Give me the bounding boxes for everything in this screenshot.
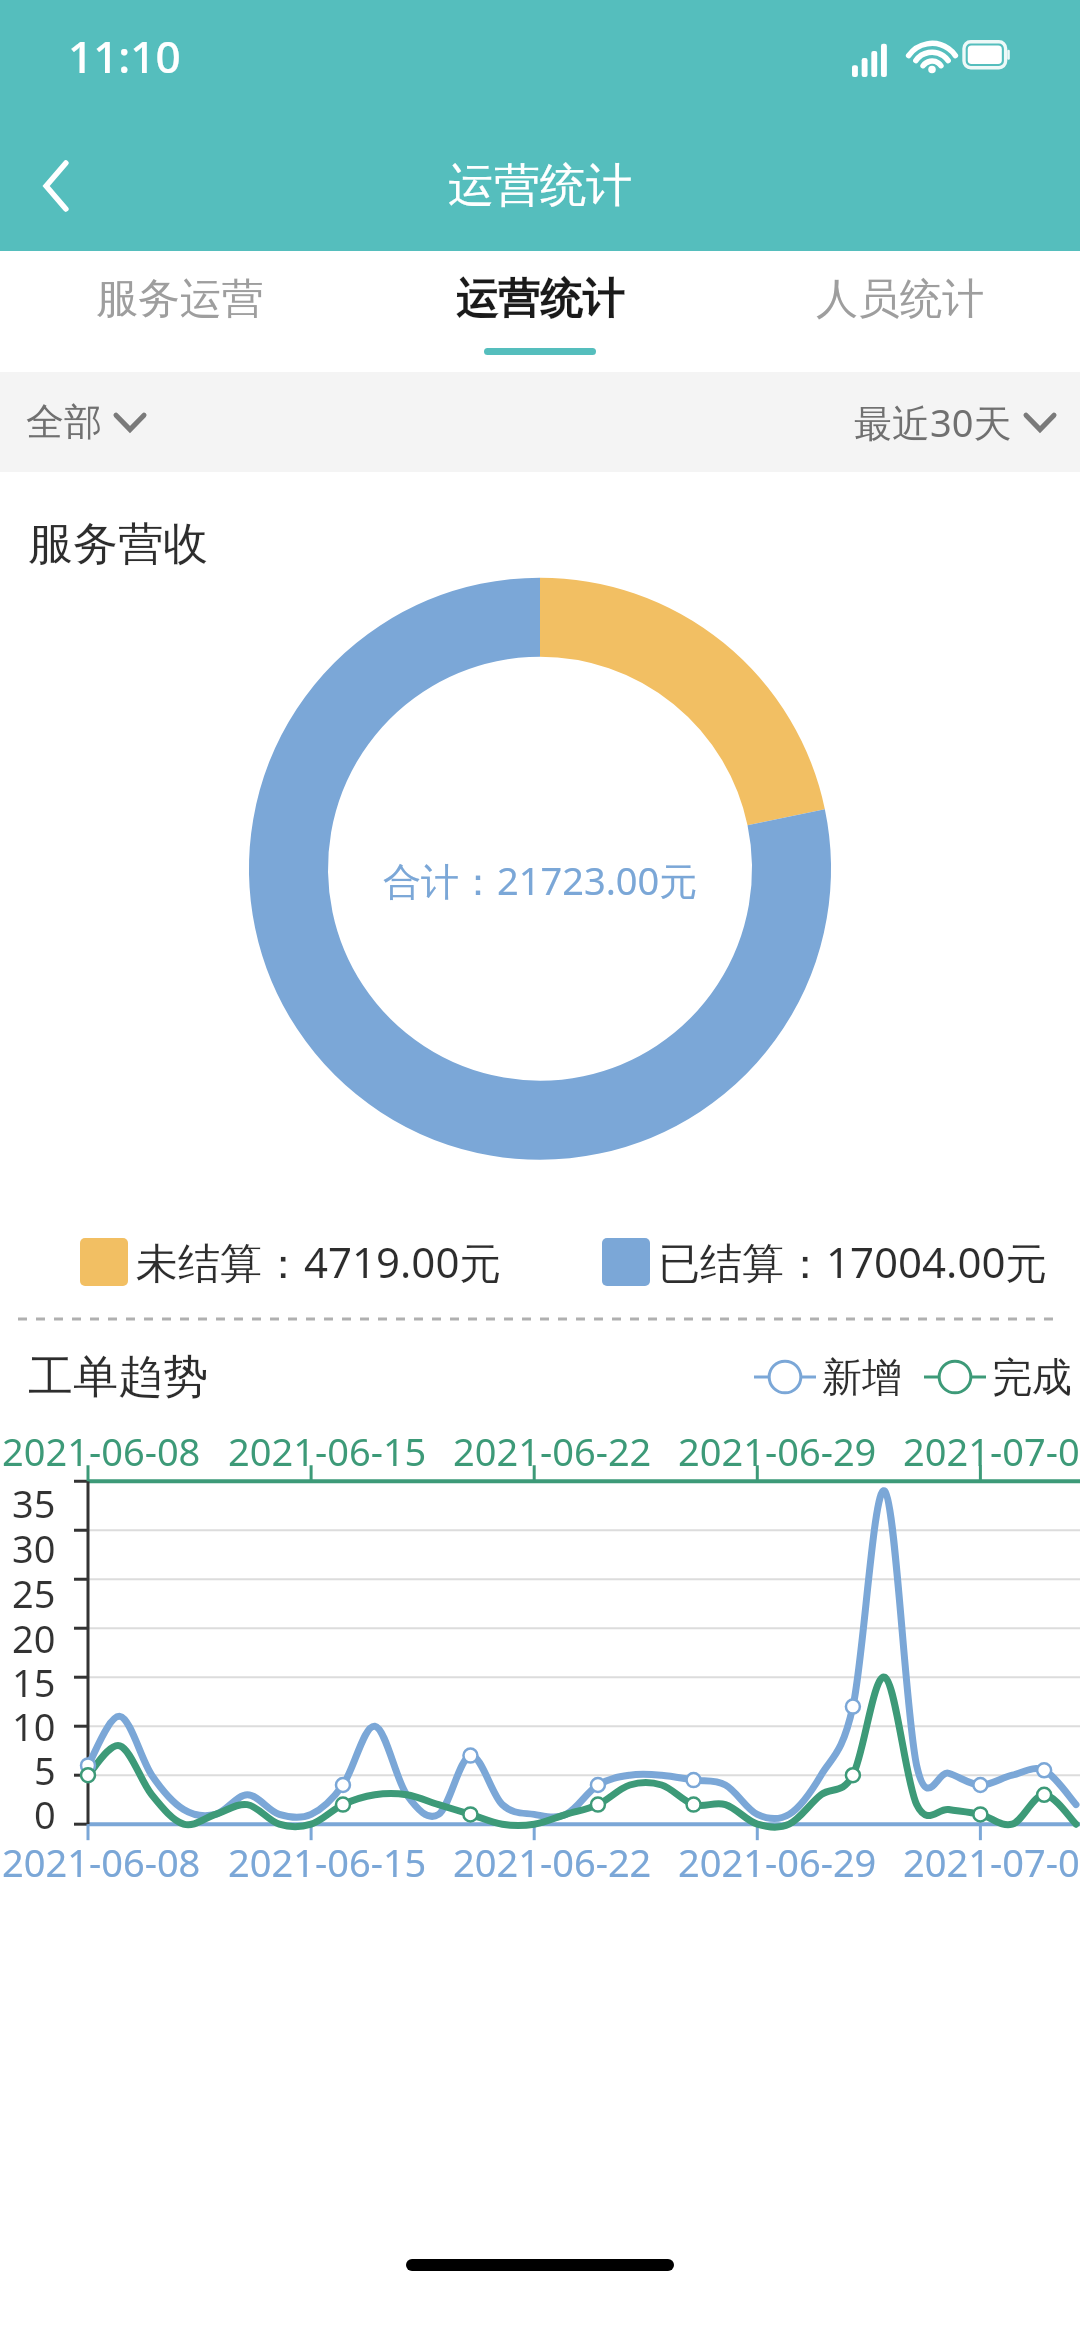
staticText: 11:10 — [68, 26, 181, 86]
staticText: 2021-06-15 — [228, 1836, 427, 1888]
staticText: 全部 — [26, 398, 102, 446]
staticText: 2021-07-0 — [903, 1425, 1080, 1477]
staticText: 5 — [34, 1744, 56, 1788]
staticText: 30 — [12, 1522, 56, 1567]
staticText: 0 — [34, 1788, 56, 1832]
button[interactable]: 人员统计 — [720, 251, 1080, 372]
staticText: 工单趋势 — [28, 1349, 208, 1406]
staticText: 2021-06-22 — [453, 1425, 652, 1477]
staticText: 2021-06-29 — [678, 1836, 877, 1888]
staticText: 未结算：4719.00元 — [136, 1233, 502, 1290]
staticText: 完成 — [992, 1352, 1072, 1402]
staticText: 服务营收 — [28, 516, 208, 573]
staticText: 10 — [12, 1700, 56, 1744]
staticText: 新增 — [822, 1352, 902, 1402]
staticText: 已结算：17004.00元 — [658, 1233, 1048, 1290]
staticText: 2021-06-29 — [678, 1425, 877, 1477]
staticText: 2021-06-08 — [2, 1836, 201, 1888]
staticText: 人员统计 — [816, 273, 984, 326]
staticText: 25 — [12, 1567, 56, 1612]
staticText: 服务运营 — [96, 273, 264, 326]
staticText: 2021-07-0 — [903, 1836, 1080, 1888]
button[interactable]: 服务运营 — [0, 251, 360, 372]
button[interactable]: Back — [0, 121, 112, 251]
staticText: 15 — [12, 1656, 56, 1700]
button[interactable]: 最近30天 — [848, 382, 1060, 462]
staticText: 运营统计 — [456, 273, 624, 326]
staticText: 35 — [12, 1477, 56, 1522]
staticText: 最近30天 — [854, 396, 1012, 448]
staticText: 20 — [12, 1612, 56, 1656]
staticText: 合计：21723.00元 — [383, 854, 698, 906]
button[interactable]: 运营统计 — [360, 251, 720, 372]
staticText: 2021-06-22 — [453, 1836, 652, 1888]
staticText: 2021-06-08 — [2, 1425, 201, 1477]
staticText: 2021-06-15 — [228, 1425, 427, 1477]
staticText: 运营统计 — [448, 157, 632, 215]
button[interactable]: 全部 — [20, 384, 150, 460]
